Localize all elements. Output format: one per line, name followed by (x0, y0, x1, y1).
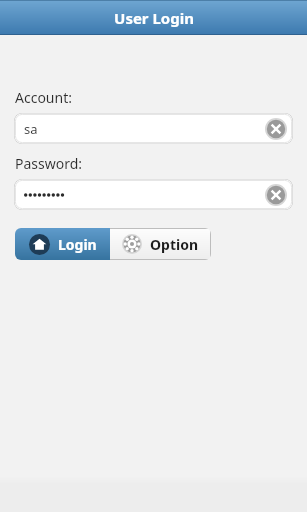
button[interactable]: Clear (265, 118, 287, 140)
button[interactable]: Clear (265, 184, 287, 206)
button[interactable]: sa (14, 113, 293, 144)
staticText: Account: (15, 88, 72, 107)
button[interactable]: Option (110, 228, 211, 260)
staticText: User Login (114, 8, 194, 28)
staticText: sa (24, 120, 38, 138)
staticText: Password: (15, 154, 83, 173)
button[interactable]: Clear (14, 179, 293, 210)
staticText: Login (58, 235, 97, 254)
button[interactable]: Login (15, 228, 110, 260)
staticText: Option (150, 235, 199, 254)
